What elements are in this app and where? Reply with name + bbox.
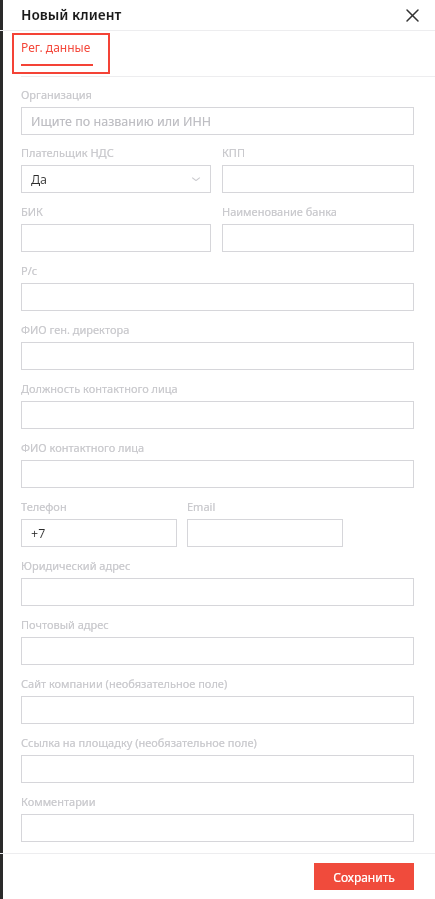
staticText: Ссылка на площадку (необязательное поле) <box>21 735 257 750</box>
button[interactable] <box>21 224 211 252</box>
staticText: Телефон <box>21 499 67 514</box>
button[interactable]: Ищите по названию или ИНН <box>21 107 414 135</box>
staticText: Сохранить <box>333 869 395 885</box>
staticText: +7 <box>31 525 46 542</box>
staticText: Почтовый адрес <box>21 617 109 632</box>
staticText: Юридический адрес <box>21 558 131 573</box>
staticText: Ищите по названию или ИНН <box>31 113 212 130</box>
button[interactable]: Да <box>21 165 211 193</box>
staticText: ФИО контактного лица <box>21 440 145 455</box>
staticText: Сайт компании (необязательное поле) <box>21 676 228 691</box>
button[interactable] <box>21 283 414 311</box>
staticText: Наименование банка <box>222 204 337 219</box>
button[interactable] <box>21 460 414 488</box>
staticText: Должность контактного лица <box>21 381 178 396</box>
staticText: Плательщик НДС <box>21 145 114 160</box>
button[interactable] <box>222 165 414 193</box>
staticText: Рег. данные <box>21 39 91 55</box>
staticText: КПП <box>222 145 246 160</box>
button[interactable] <box>222 224 414 252</box>
button[interactable] <box>21 755 414 783</box>
staticText: Комментарии <box>21 794 96 809</box>
button[interactable]: Close <box>400 3 424 27</box>
staticText: Да <box>31 171 48 188</box>
staticText: БИК <box>21 204 43 219</box>
button[interactable] <box>21 814 414 842</box>
button[interactable]: +7 <box>21 519 177 547</box>
button[interactable] <box>21 578 414 606</box>
button[interactable] <box>21 401 414 429</box>
button[interactable] <box>21 637 414 665</box>
staticText: Новый клиент <box>21 6 122 24</box>
staticText: Р/с <box>21 263 38 278</box>
staticText: Email <box>187 499 216 514</box>
button[interactable] <box>21 696 414 724</box>
button[interactable]: Рег. данные <box>21 39 93 66</box>
button[interactable] <box>21 342 414 370</box>
button[interactable] <box>187 519 343 547</box>
staticText: Организация <box>21 87 92 102</box>
button[interactable]: Сохранить <box>314 863 414 890</box>
staticText: ФИО ген. директора <box>21 322 130 337</box>
